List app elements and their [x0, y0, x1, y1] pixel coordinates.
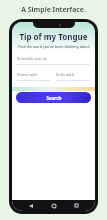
staticText: Tip of my Tongue — [19, 31, 88, 42]
button[interactable]: Starts with — [17, 72, 50, 82]
button[interactable]: Ends with — [56, 72, 90, 82]
staticText: Starts with — [17, 72, 38, 77]
button[interactable]: Back — [26, 201, 35, 210]
button[interactable]: Recent apps — [72, 201, 81, 210]
staticText: Find the word you've been thinking about — [18, 44, 90, 49]
button[interactable]: Home — [49, 201, 58, 210]
staticText: Reminds you of — [17, 56, 47, 61]
button[interactable]: Search — [16, 92, 91, 103]
staticText: Ends with — [56, 72, 75, 77]
button[interactable]: Reminds you of — [17, 56, 90, 66]
staticText: A Simple Interface. — [21, 5, 86, 15]
staticText: Search — [46, 95, 62, 101]
